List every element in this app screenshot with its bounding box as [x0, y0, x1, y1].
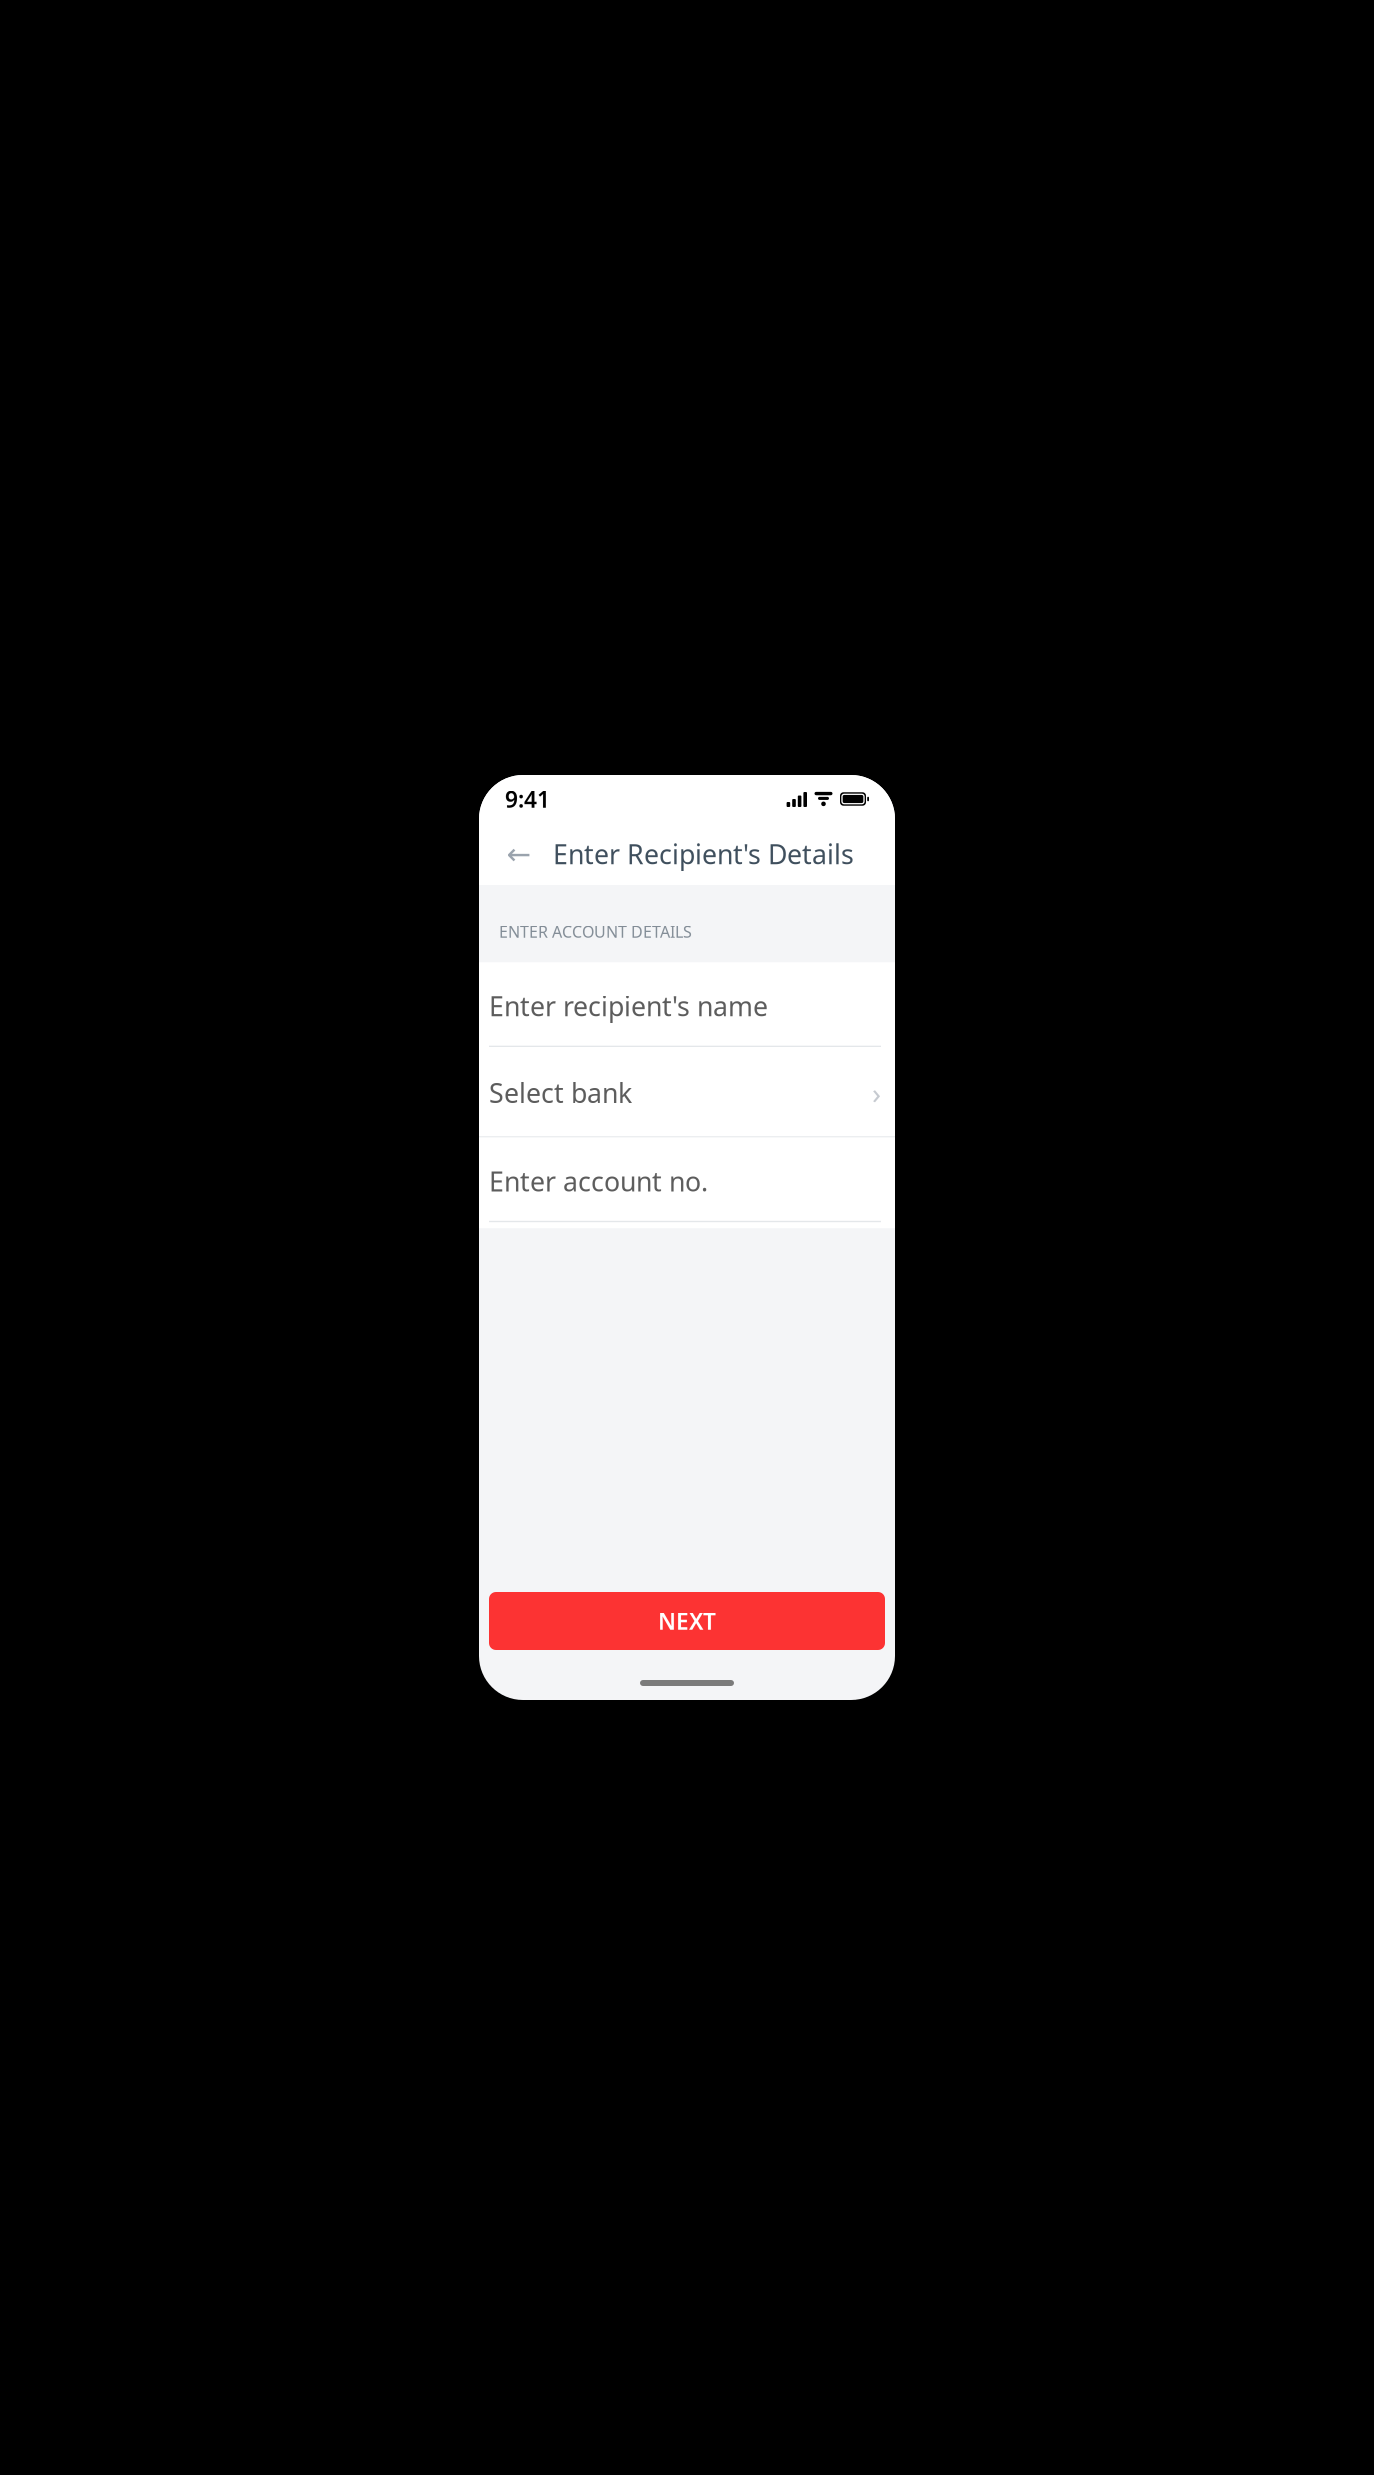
staticText: ← — [506, 837, 531, 871]
staticText: › — [872, 1073, 881, 1112]
button[interactable]: Select bank — [479, 1047, 895, 1137]
button[interactable]: Back — [495, 830, 543, 878]
staticText: ENTER ACCOUNT DETAILS — [499, 921, 692, 942]
button[interactable]: NEXT — [489, 1592, 885, 1650]
staticText: Enter Recipient's Details — [553, 836, 854, 872]
staticText: Enter recipient's name — [489, 988, 768, 1024]
staticText: NEXT — [658, 1606, 716, 1636]
staticText: 9:41 — [505, 784, 550, 814]
staticText: Select bank — [489, 1075, 632, 1110]
staticText: Enter account no. — [489, 1163, 708, 1199]
